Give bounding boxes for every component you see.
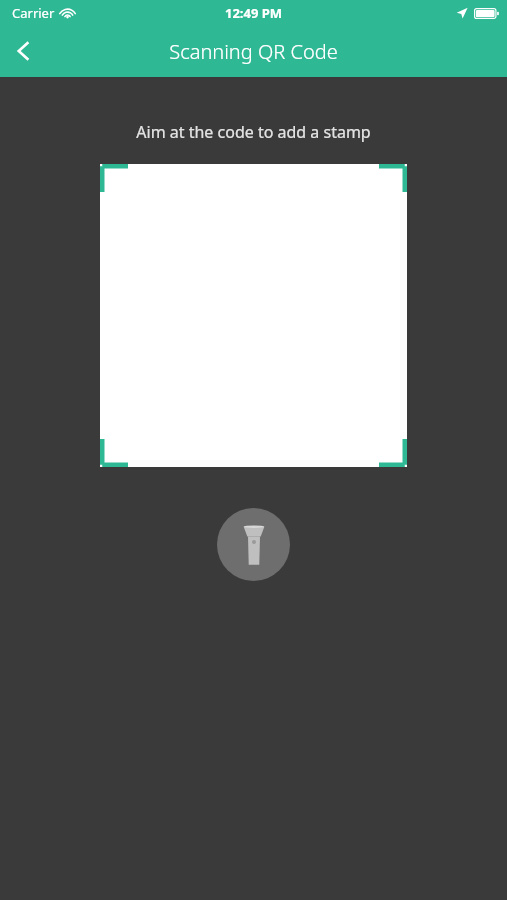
button[interactable]: Toggle flashlight	[217, 508, 290, 581]
staticText: Carrier	[12, 4, 55, 22]
staticText: Aim at the code to add a stamp	[0, 121, 507, 143]
button[interactable]: Back	[0, 27, 48, 75]
staticText: Scanning QR Code	[169, 38, 338, 65]
staticText: 12:49 PM	[225, 4, 283, 22]
